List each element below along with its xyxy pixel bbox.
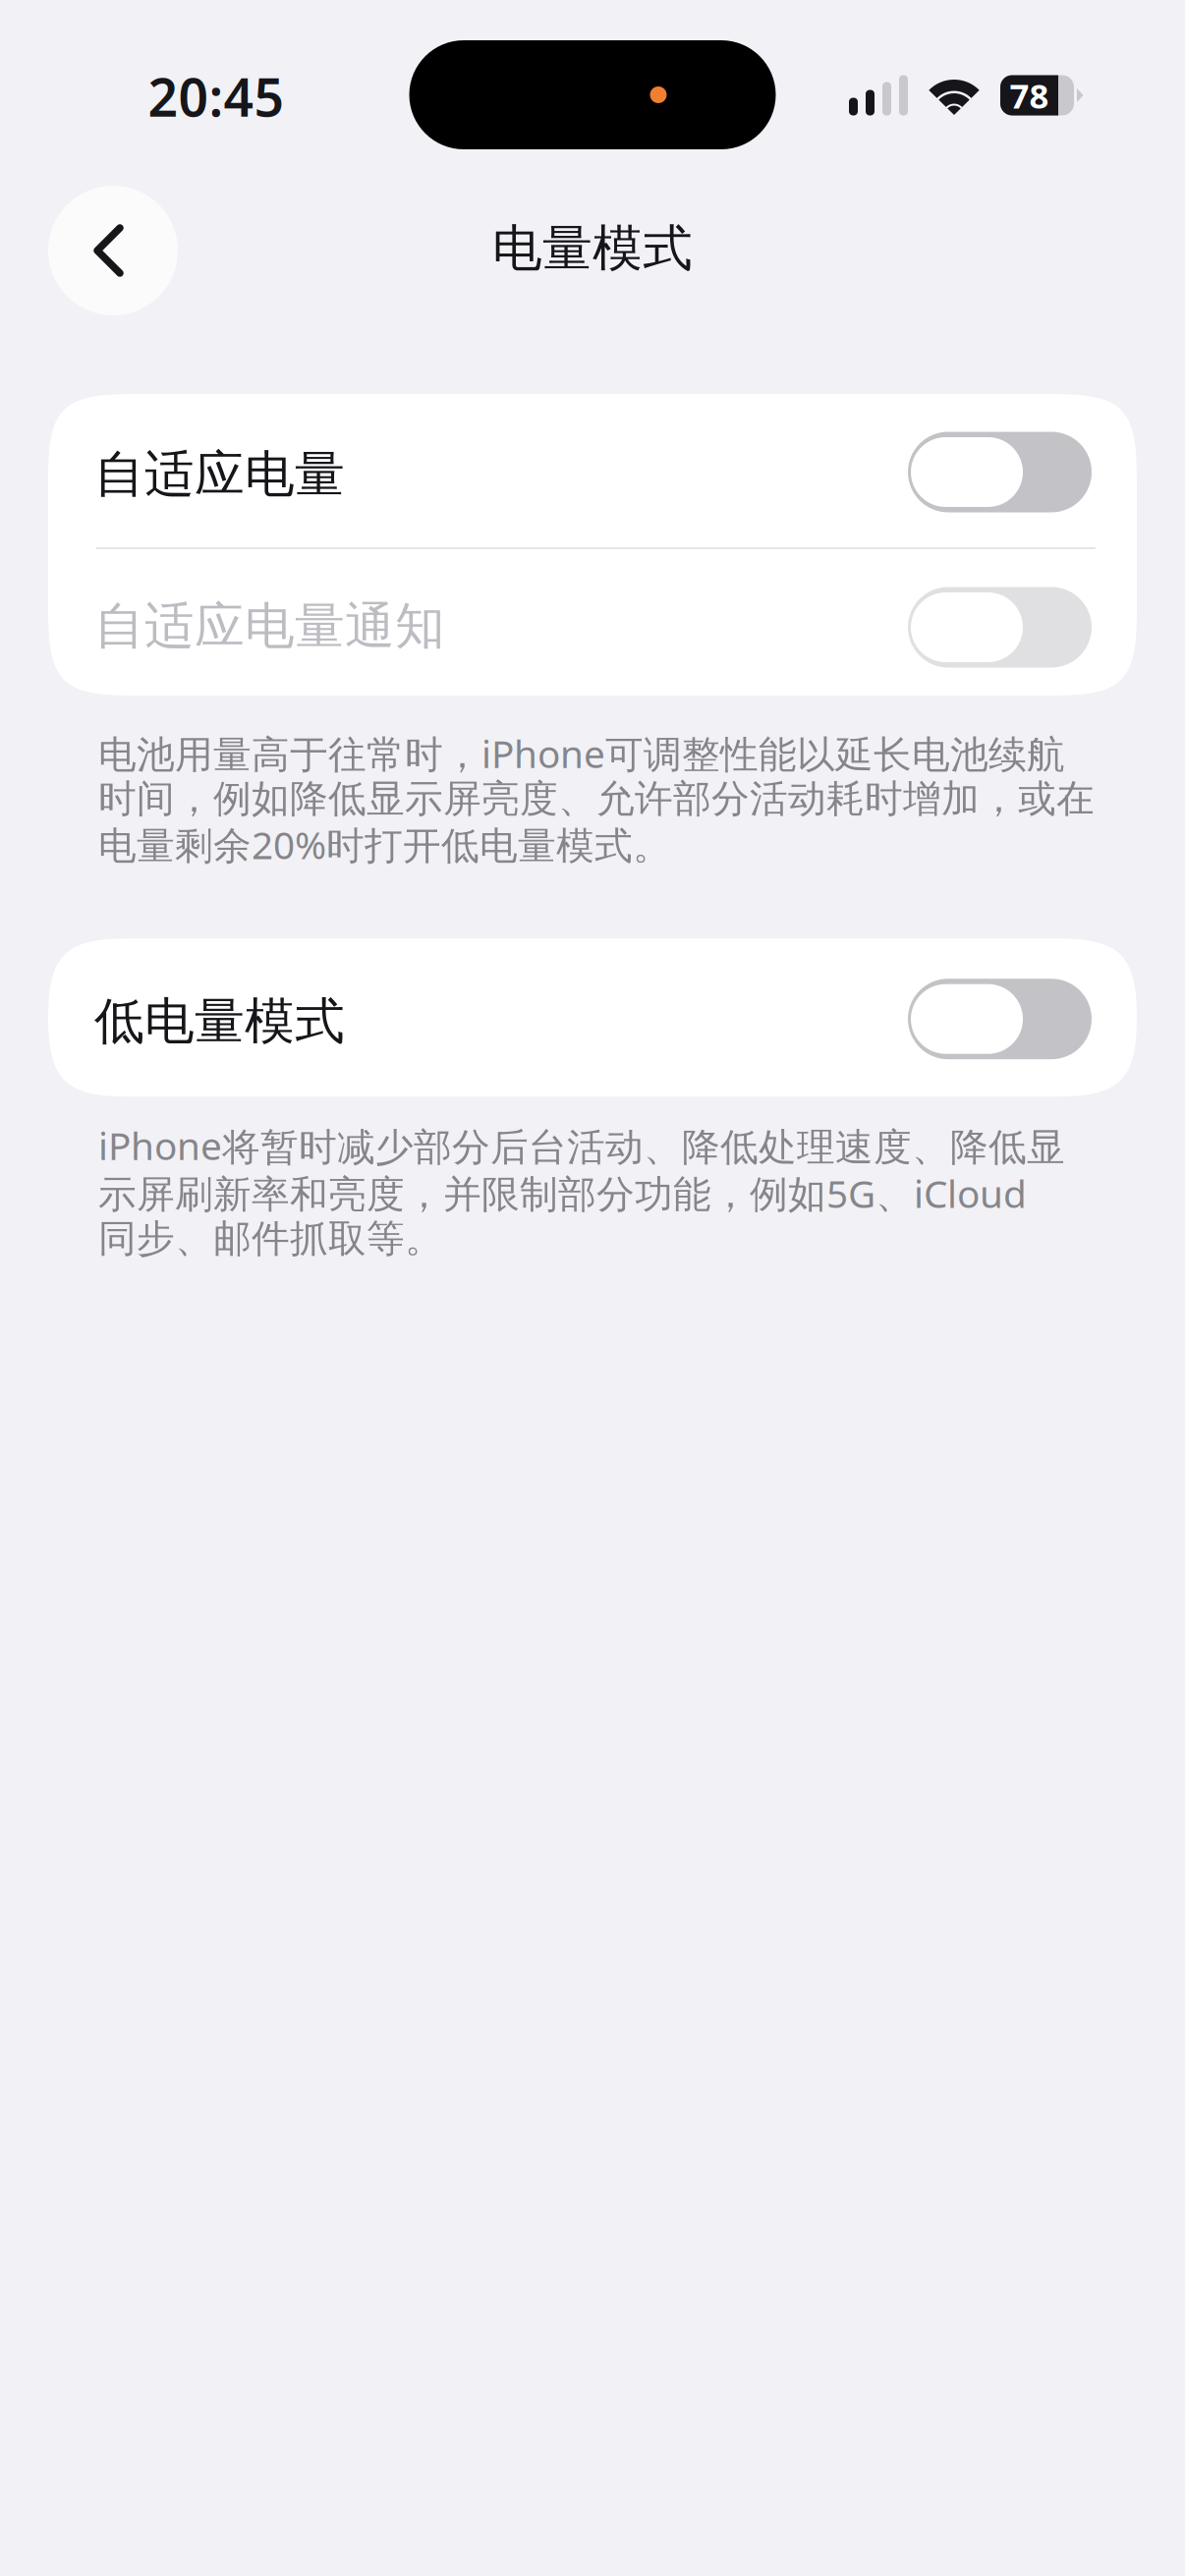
button[interactable]: 低电量模式	[48, 938, 1137, 1097]
staticText: 78	[1010, 73, 1049, 118]
staticText: 电量模式	[492, 218, 693, 279]
staticText: 自适应电量	[94, 444, 345, 505]
staticText: 自适应电量通知	[94, 596, 445, 657]
staticText: 20:45	[148, 62, 284, 131]
staticText: iPhone将暂时减少部分后台活动、降低处理速度、降低显 示屏刷新率和亮度，并限…	[98, 1120, 1065, 1262]
button[interactable]: Back	[48, 186, 178, 315]
button[interactable]: 自适应电量通知	[48, 549, 1137, 696]
staticText: 电池用量高于往常时，iPhone可调整性能以延长电池续航 时间，例如降低显示屏亮…	[98, 728, 1095, 870]
button[interactable]: 自适应电量	[48, 394, 1137, 547]
staticText: 低电量模式	[94, 991, 345, 1052]
